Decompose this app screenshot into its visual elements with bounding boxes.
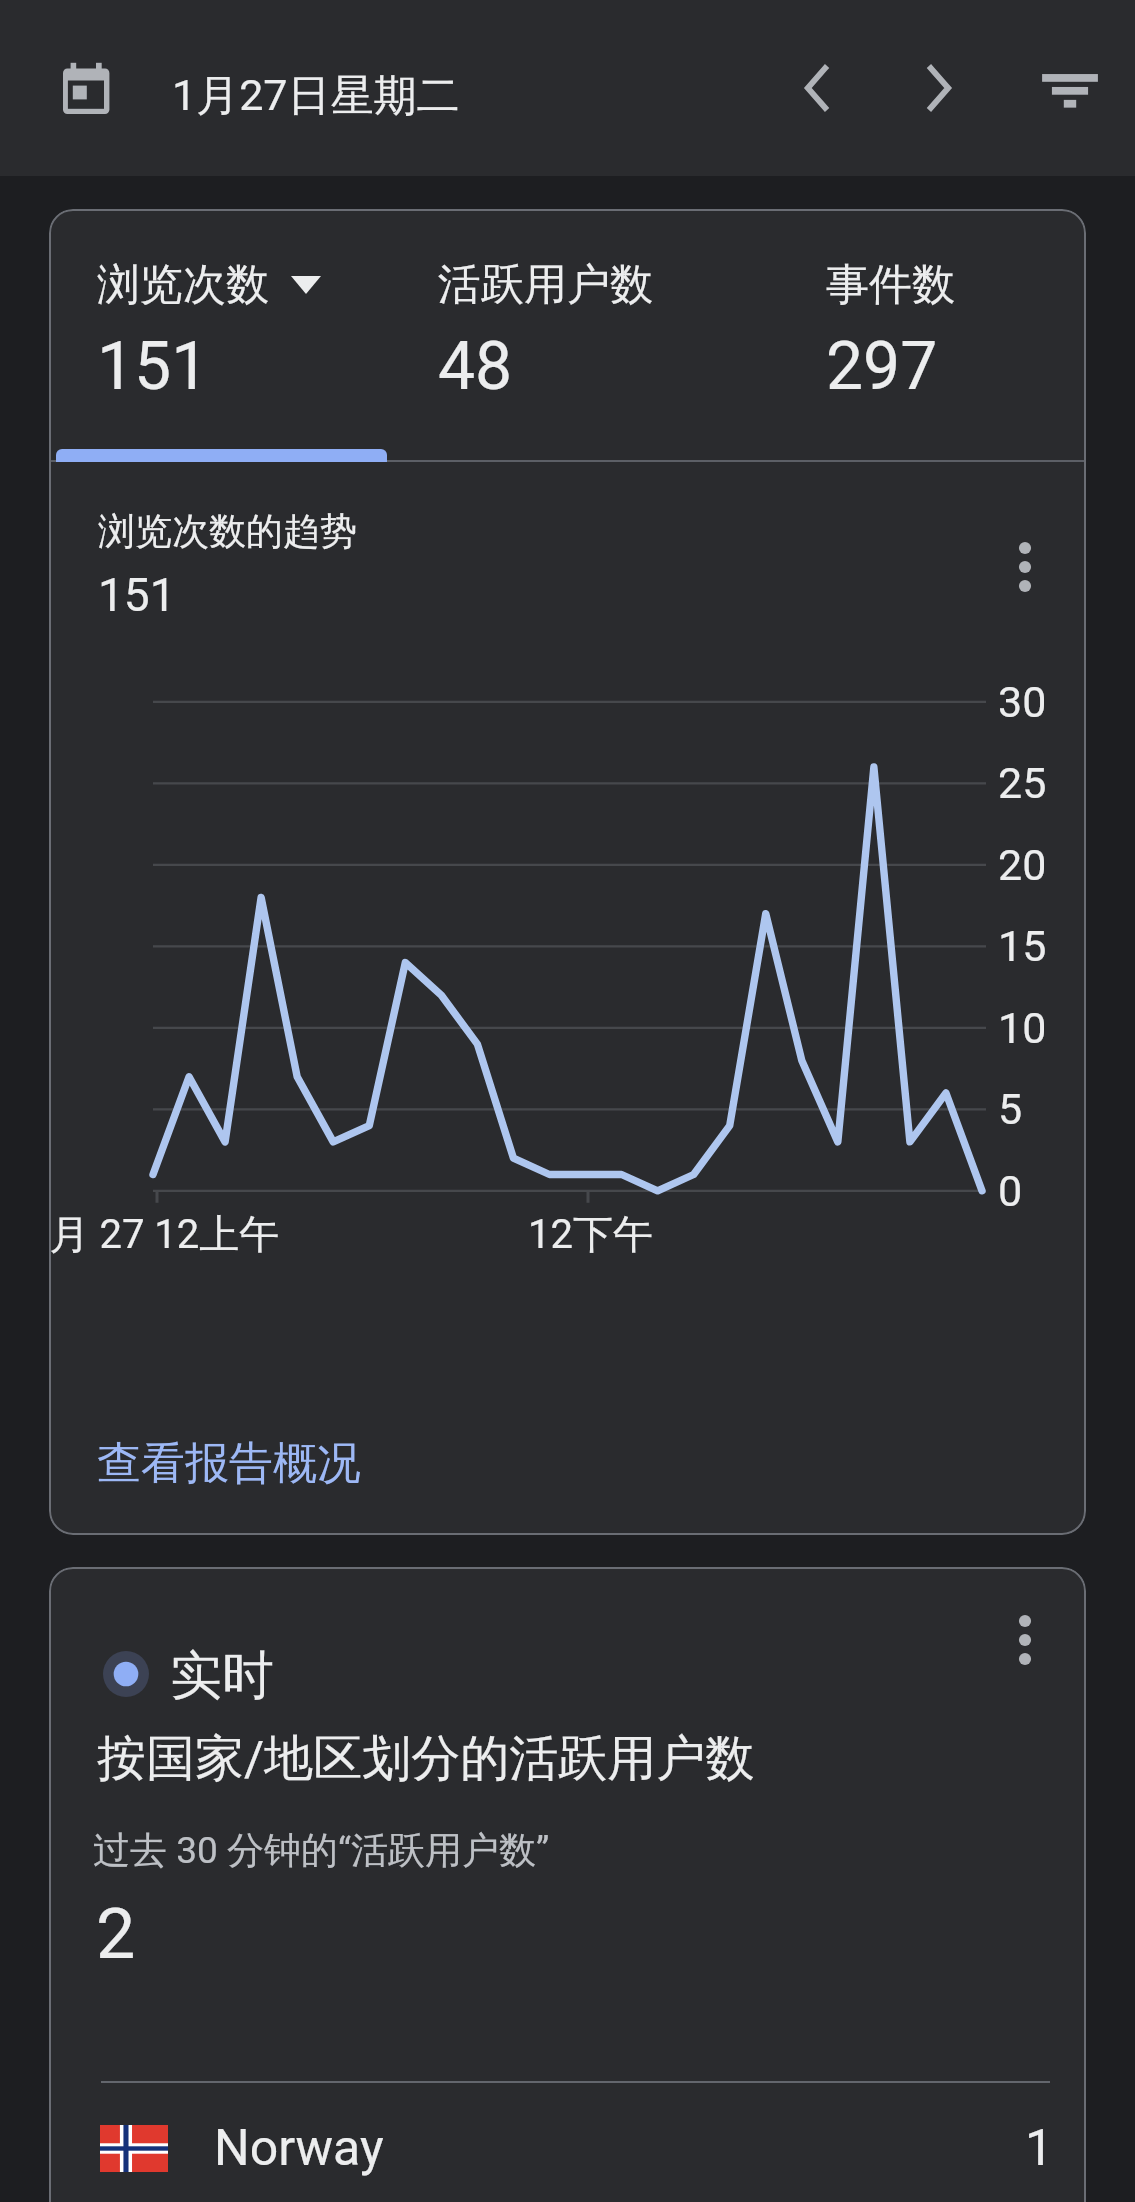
button[interactable]: Previous day <box>758 30 874 146</box>
button[interactable]: Norway <box>49 2089 1086 2202</box>
staticText: 查看报告概况 <box>97 1436 361 1491</box>
staticText: 15 <box>998 921 1047 971</box>
staticText: 12下午 <box>528 1209 653 1259</box>
button[interactable]: 活跃用户数 <box>438 258 824 408</box>
staticText: 25 <box>998 758 1047 808</box>
staticText: 10 <box>998 1003 1047 1053</box>
button[interactable]: Filter <box>1012 30 1128 146</box>
staticText: 48 <box>438 328 513 405</box>
staticText: Norway <box>214 2119 384 2178</box>
staticText: 浏览次数的趋势 <box>98 508 357 555</box>
staticText: 297 <box>826 328 938 405</box>
staticText: 20 <box>998 840 1047 890</box>
staticText: 151 <box>98 568 176 622</box>
staticText: 事件数 <box>826 258 955 312</box>
staticText: 过去 30 分钟的“活跃用户数” <box>93 1827 550 1874</box>
button[interactable]: 查看报告概况 <box>97 1436 361 1491</box>
button[interactable]: 浏览次数 <box>97 258 437 408</box>
staticText: 2 <box>96 1893 136 1975</box>
staticText: 151 <box>97 328 209 405</box>
staticText: 1月 27 12上午 <box>49 1209 280 1259</box>
staticText: 按国家/地区划分的活跃用户数 <box>97 1728 755 1790</box>
staticText: 30 <box>998 677 1047 727</box>
staticText: 活跃用户数 <box>438 258 653 312</box>
button[interactable]: 事件数 <box>826 258 1086 408</box>
button[interactable]: Chart options <box>986 528 1064 606</box>
staticText: 1月27日星期二 <box>172 69 460 123</box>
button[interactable]: Realtime options <box>986 1601 1064 1679</box>
staticText: 5 <box>998 1084 1023 1134</box>
staticText: 1 <box>1025 2119 1054 2178</box>
staticText: 实时 <box>170 1643 274 1709</box>
staticText: 0 <box>998 1166 1023 1216</box>
button[interactable]: Select date <box>24 24 152 152</box>
button[interactable]: Next day <box>882 30 998 146</box>
staticText: 浏览次数 <box>97 258 269 312</box>
